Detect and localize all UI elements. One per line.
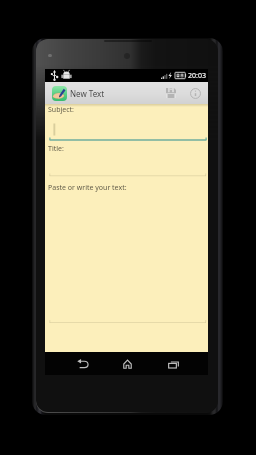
button[interactable]: Home <box>112 352 142 375</box>
staticText: 20:03 <box>188 71 206 81</box>
button[interactable]: Info <box>183 82 207 104</box>
staticText: Paste or write your text: <box>48 183 127 193</box>
button[interactable] <box>45 116 208 144</box>
button[interactable]: New Text <box>45 82 108 104</box>
staticText: Title: <box>48 144 64 154</box>
button[interactable]: Save <box>159 82 183 104</box>
button[interactable] <box>45 154 208 177</box>
staticText: Subject: <box>48 105 74 115</box>
button[interactable]: Back <box>68 352 98 375</box>
button[interactable]: Recents <box>158 352 188 375</box>
staticText: New Text <box>70 88 105 99</box>
